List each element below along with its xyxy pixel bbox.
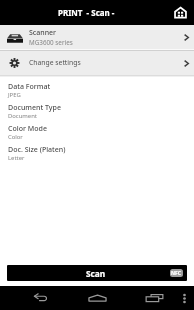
button[interactable]: Doc. Size (Platen): [0, 143, 194, 164]
staticText: Document Type: [8, 102, 61, 112]
button[interactable]: More options: [174, 286, 194, 310]
staticText: Data Format: [8, 81, 51, 91]
staticText: Document: [8, 112, 37, 120]
staticText: PRINT - Scan -: [58, 7, 115, 18]
staticText: NFC: [171, 270, 182, 277]
staticText: Doc. Size (Platen): [8, 144, 66, 154]
staticText: Letter: [8, 154, 25, 162]
button[interactable]: Color Mode: [0, 122, 194, 143]
button[interactable]: Recent apps: [126, 286, 183, 310]
staticText: Scanner: [29, 28, 57, 38]
button[interactable]: Document Type: [0, 101, 194, 122]
button[interactable]: Data Format: [0, 80, 194, 101]
button[interactable]: Change settings: [0, 51, 194, 75]
button[interactable]: Scanner: [0, 25, 194, 49]
staticText: Color Mode: [8, 123, 47, 133]
staticText: Scan: [86, 268, 106, 279]
button[interactable]: Scan: [7, 265, 187, 281]
staticText: JPEG: [8, 91, 21, 99]
staticText: MG3600 series: [29, 38, 73, 47]
button[interactable]: Home: [166, 0, 194, 25]
button[interactable]: Back: [11, 286, 69, 310]
button[interactable]: Home: [69, 286, 126, 310]
staticText: Change settings: [29, 58, 179, 67]
staticText: Color: [8, 133, 23, 141]
